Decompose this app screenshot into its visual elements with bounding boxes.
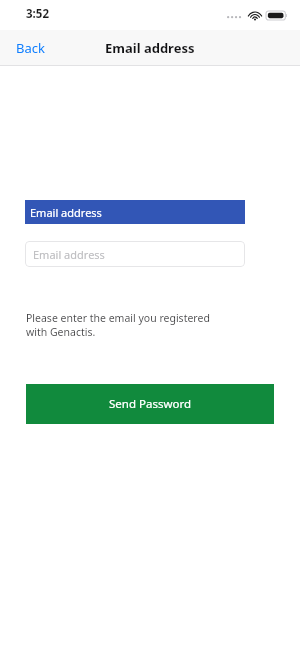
button[interactable]: Email address: [25, 241, 245, 267]
staticText: Please enter the email you registered wi…: [26, 311, 210, 339]
button[interactable]: Send Password: [26, 384, 274, 424]
staticText: Send Password: [109, 396, 191, 412]
staticText: 3:52: [26, 6, 49, 22]
staticText: Back: [16, 39, 45, 57]
staticText: Email address: [30, 205, 102, 220]
staticText: Email address: [33, 247, 105, 262]
button[interactable]: Back: [0, 33, 61, 63]
staticText: Email address: [105, 39, 195, 57]
